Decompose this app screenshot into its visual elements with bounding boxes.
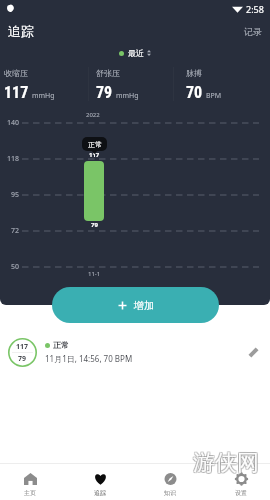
staticText: 79	[91, 221, 98, 229]
button[interactable]: 增加	[52, 287, 219, 323]
staticText: 游侠网	[193, 450, 259, 478]
staticText: 游侠网	[193, 449, 259, 477]
staticText: 118	[7, 154, 20, 164]
staticText: 95	[11, 190, 20, 200]
button[interactable]: 主页	[4, 464, 56, 500]
staticText: 增加	[134, 299, 154, 312]
staticText: 追踪	[8, 23, 34, 39]
button[interactable]: 记录	[236, 21, 270, 42]
staticText: 72	[11, 226, 20, 236]
staticText: 正常	[53, 340, 69, 350]
staticText: 游侠网	[194, 450, 260, 478]
staticText: 11-1	[88, 270, 101, 278]
staticText: 79	[18, 354, 27, 364]
staticText: 游侠网	[192, 448, 258, 476]
staticText: 知识	[164, 489, 176, 497]
staticText: 2:58	[246, 3, 264, 15]
button[interactable]: 117	[0, 330, 270, 374]
button[interactable]: 知识	[144, 464, 196, 500]
staticText: mmHg	[32, 91, 55, 101]
staticText: 脉搏	[186, 68, 202, 78]
button[interactable]: 追踪	[74, 464, 126, 500]
staticText: 游侠网	[192, 449, 258, 477]
staticText: 设置	[235, 489, 247, 497]
button[interactable]: Edit	[242, 341, 264, 363]
staticText: 79	[96, 83, 113, 102]
button[interactable]: 最近	[119, 48, 151, 58]
staticText: mmHg	[116, 91, 139, 101]
staticText: 117	[89, 151, 100, 159]
staticText: 游侠网	[193, 448, 259, 476]
staticText: 70	[186, 83, 203, 102]
staticText: 主页	[24, 489, 36, 497]
staticText: 收缩压	[4, 68, 28, 78]
staticText: 游侠网	[192, 450, 258, 478]
staticText: 11月1日, 14:56, 70 BPM	[45, 353, 133, 364]
staticText: 2022	[86, 111, 100, 119]
staticText: 140	[7, 118, 20, 128]
button[interactable]: 设置	[215, 464, 267, 500]
staticText: 117	[16, 342, 29, 352]
staticText: 50	[11, 262, 20, 272]
staticText: 游侠网	[194, 449, 260, 477]
staticText: 舒张压	[96, 68, 120, 78]
staticText: BPM	[206, 91, 222, 101]
staticText: 正常	[88, 140, 102, 149]
staticText: 最近	[128, 48, 144, 58]
staticText: 记录	[244, 26, 262, 37]
staticText: 追踪	[94, 489, 106, 497]
staticText: 游侠网	[194, 448, 260, 476]
staticText: 117	[4, 83, 29, 102]
